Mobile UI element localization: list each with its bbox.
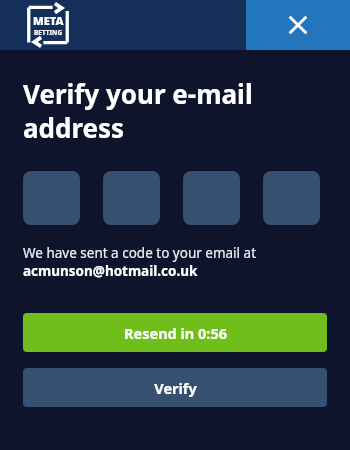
- staticText: We have sent a code to your email at: [23, 244, 257, 262]
- button[interactable]: Code digit 3: [183, 171, 240, 225]
- button[interactable]: Close: [246, 0, 350, 50]
- staticText: META: [33, 13, 64, 28]
- staticText: Resend in 0:56: [124, 323, 227, 343]
- staticText: Verify: [154, 378, 197, 398]
- staticText: Verify your e-mail address: [23, 76, 253, 145]
- staticText: BETTING: [34, 28, 63, 37]
- button[interactable]: Code digit 2: [103, 171, 160, 225]
- button[interactable]: Meta Betting logo: [22, 3, 74, 47]
- button[interactable]: Verify: [23, 368, 327, 407]
- button[interactable]: Code digit 1: [23, 171, 80, 225]
- button[interactable]: Code digit 4: [263, 171, 320, 225]
- button[interactable]: Resend in 0:56: [23, 313, 327, 352]
- staticText: acmunson@hotmail.co.uk: [23, 262, 198, 280]
